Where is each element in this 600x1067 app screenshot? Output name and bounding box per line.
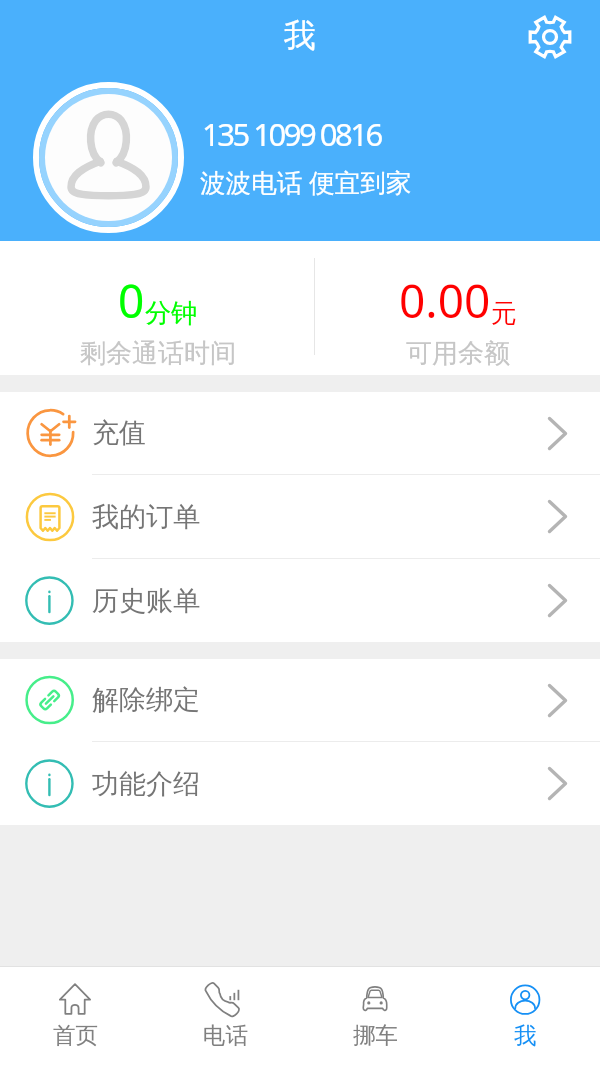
button[interactable]: 我 xyxy=(450,967,600,1067)
staticText: 波波电话 便宜到家 xyxy=(200,165,412,200)
staticText: 0.00 xyxy=(399,269,491,332)
button[interactable]: 首页 xyxy=(0,967,150,1067)
button[interactable]: 充值 xyxy=(0,392,600,474)
button[interactable]: Settings xyxy=(526,13,574,61)
button[interactable]: 我的订单 xyxy=(0,475,600,558)
staticText: 可用余额 xyxy=(406,337,510,370)
button[interactable]: 功能介绍 xyxy=(0,742,600,825)
button[interactable]: 历史账单 xyxy=(0,559,600,642)
staticText: 我 xyxy=(284,15,316,55)
button[interactable]: 解除绑定 xyxy=(0,659,600,741)
staticText: 分钟 xyxy=(145,297,197,330)
staticText: 首页 xyxy=(53,1021,98,1049)
staticText: 历史账单 xyxy=(92,584,200,618)
staticText: 挪车 xyxy=(353,1021,398,1049)
staticText: 功能介绍 xyxy=(92,767,200,801)
staticText: 我 xyxy=(514,1021,537,1049)
button[interactable]: 电话 xyxy=(150,967,300,1067)
staticText: 我的订单 xyxy=(92,500,200,534)
staticText: 电话 xyxy=(203,1021,248,1049)
staticText: 135 1099 0816 xyxy=(202,113,381,155)
staticText: 剩余通话时间 xyxy=(80,337,236,370)
button[interactable]: 挪车 xyxy=(300,967,450,1067)
staticText: 0 xyxy=(118,269,145,332)
staticText: 充值 xyxy=(92,416,146,450)
staticText: 解除绑定 xyxy=(92,683,200,717)
staticText: 元 xyxy=(491,297,517,330)
